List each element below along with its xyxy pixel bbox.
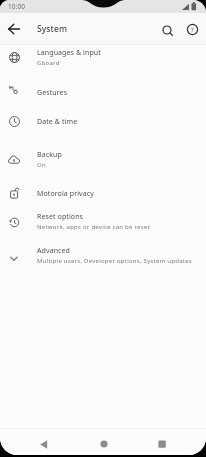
staticText: Network, apps or device can be reset xyxy=(37,223,150,231)
staticText: Motorola privacy xyxy=(37,189,94,199)
staticText: Advanced xyxy=(37,246,70,256)
staticText: 10:00 xyxy=(8,2,26,11)
staticText: Languages & input xyxy=(37,48,101,58)
button[interactable]: Motorola privacy xyxy=(0,179,206,208)
button[interactable] xyxy=(146,429,178,455)
button[interactable]: ? xyxy=(181,13,203,44)
staticText: Gboard xyxy=(37,59,60,67)
button[interactable]: Languages & input xyxy=(0,45,206,69)
staticText: ? xyxy=(191,26,194,34)
button[interactable] xyxy=(0,13,28,44)
button[interactable]: Reset options xyxy=(0,208,206,234)
button[interactable] xyxy=(88,429,120,455)
button[interactable] xyxy=(156,13,178,44)
staticText: Reset options xyxy=(37,212,84,222)
button[interactable]: Gestures xyxy=(0,78,206,107)
button[interactable]: Date & time xyxy=(0,107,206,136)
staticText: Backup xyxy=(37,150,62,160)
staticText: On xyxy=(37,161,46,169)
button[interactable]: Backup xyxy=(0,145,206,174)
staticText: Gestures xyxy=(37,88,68,98)
button[interactable] xyxy=(28,429,60,455)
staticText: Date & time xyxy=(37,117,78,127)
staticText: Multiple users, Developer options, Syste… xyxy=(37,257,192,265)
button[interactable]: Advanced xyxy=(0,242,206,268)
staticText: System xyxy=(37,23,68,35)
